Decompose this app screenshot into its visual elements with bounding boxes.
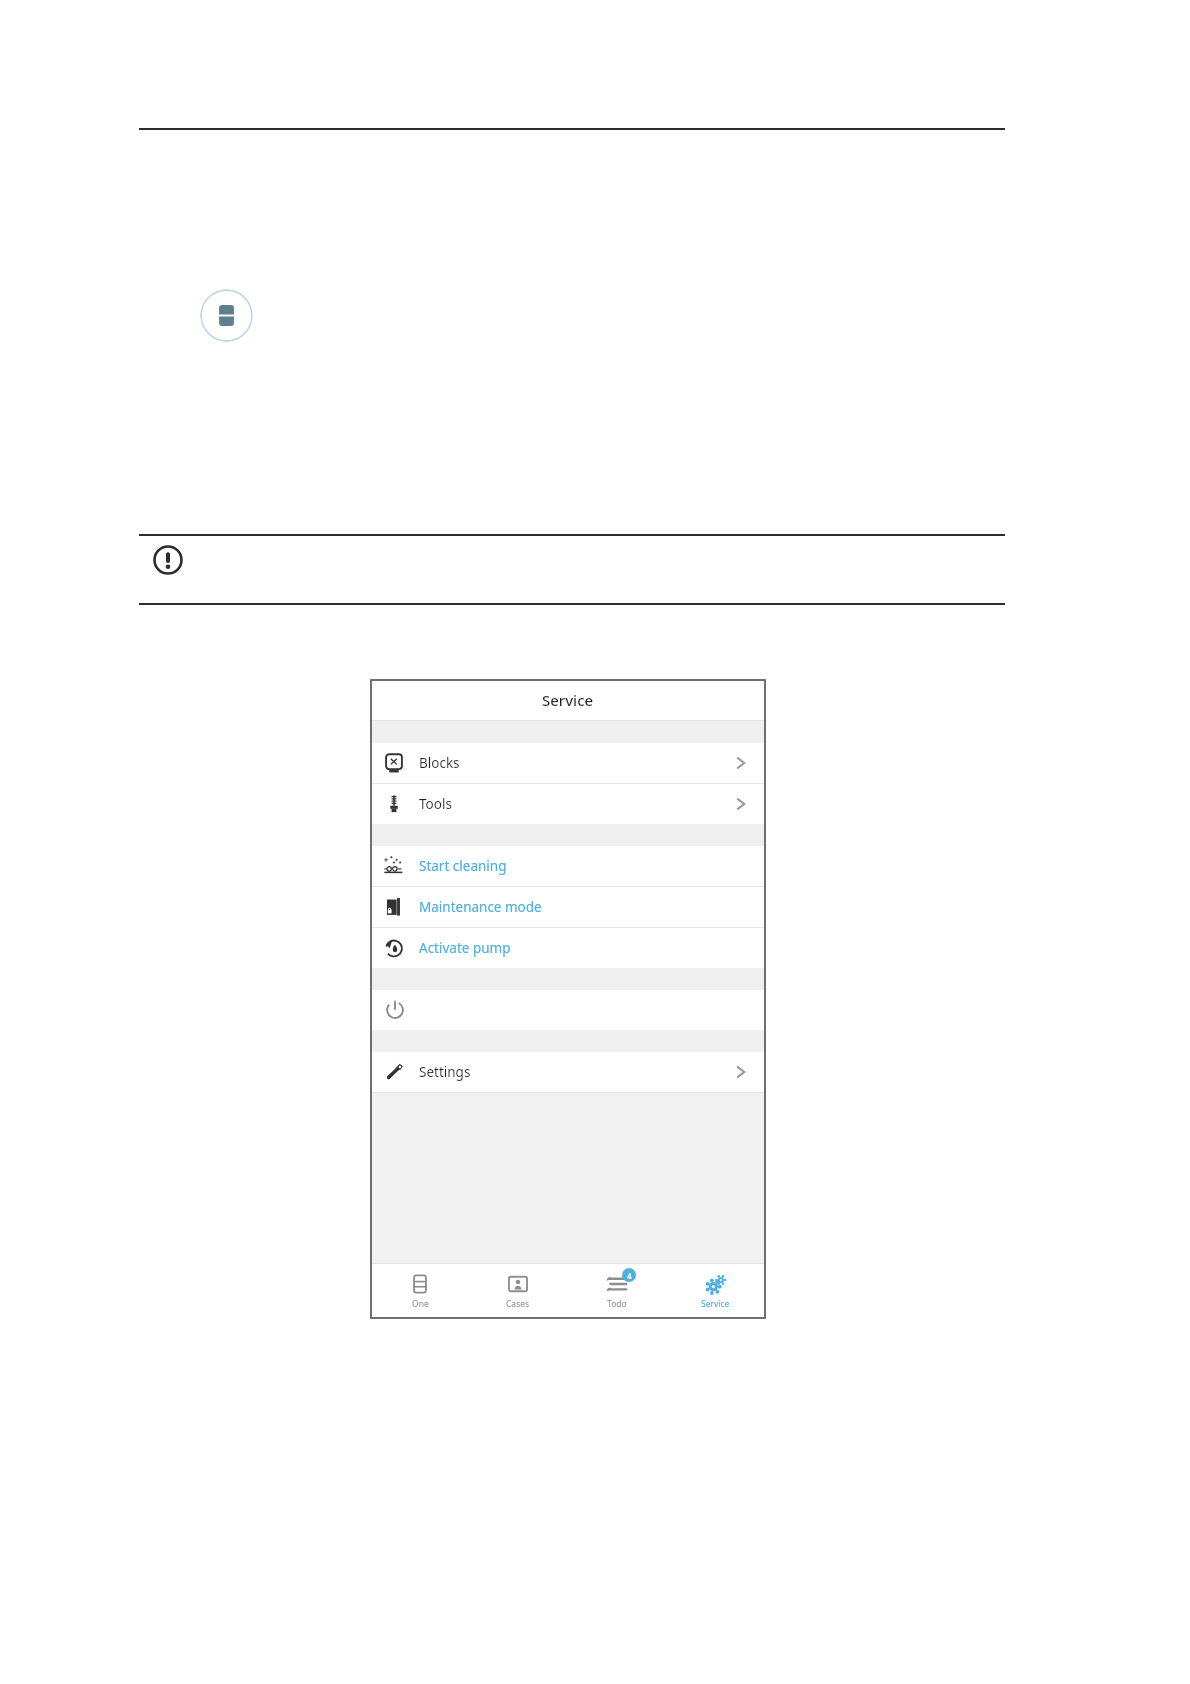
staticText: Start cleaning <box>419 857 507 875</box>
staticText: Settings <box>419 1063 471 1081</box>
button[interactable]: Tools <box>371 784 765 824</box>
button[interactable]: Start cleaning <box>371 846 765 886</box>
button[interactable]: Device <box>200 289 253 342</box>
button[interactable]: 4 <box>567 1264 666 1318</box>
staticText: 4 <box>627 1270 632 1281</box>
staticText: Todo <box>607 1298 627 1310</box>
staticText: Activate pump <box>419 939 511 957</box>
button[interactable]: Maintenance mode <box>371 887 765 927</box>
button[interactable]: Blocks <box>371 743 765 783</box>
staticText: Blocks <box>419 754 460 772</box>
staticText: Tools <box>419 795 452 813</box>
staticText: Maintenance mode <box>419 898 542 916</box>
staticText: Service <box>542 690 594 710</box>
staticText: Cases <box>506 1298 530 1310</box>
button[interactable]: Power off <box>371 990 765 1030</box>
staticText: One <box>412 1298 429 1310</box>
button[interactable]: Service <box>666 1264 765 1318</box>
button[interactable]: One <box>371 1264 469 1318</box>
button[interactable]: Cases <box>469 1264 567 1318</box>
staticText: Service <box>701 1298 730 1310</box>
button[interactable]: Settings <box>371 1052 765 1092</box>
button[interactable]: Activate pump <box>371 928 765 968</box>
